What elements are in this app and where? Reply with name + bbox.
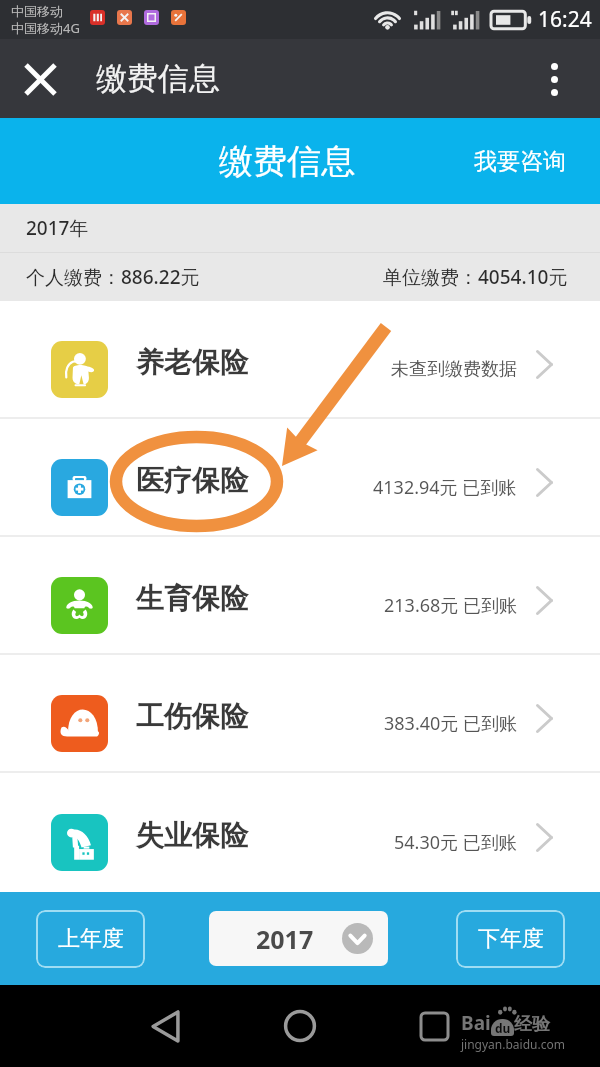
button[interactable]: 生育保险: [0, 537, 600, 653]
button[interactable]: 养老保险: [0, 301, 600, 417]
button[interactable]: Recent apps: [404, 996, 464, 1056]
staticText: 2017年: [26, 215, 89, 241]
staticText: 2017: [256, 922, 314, 956]
staticText: 个人缴费：886.22元: [26, 264, 200, 290]
staticText: 缴费信息: [219, 140, 355, 183]
button[interactable]: 下年度: [456, 910, 565, 968]
staticText: 失业保险: [136, 818, 248, 853]
button[interactable]: 工伤保险: [0, 655, 600, 771]
button[interactable]: Close: [10, 49, 70, 109]
staticText: 383.40元 已到账: [384, 711, 517, 736]
button[interactable]: Home: [265, 991, 335, 1061]
staticText: 养老保险: [136, 345, 248, 380]
staticText: 中国移动4G: [11, 19, 80, 37]
staticText: Bai: [461, 1010, 491, 1036]
staticText: 医疗保险: [136, 463, 248, 498]
button[interactable]: 缴费信息: [190, 118, 384, 204]
staticText: 我要咨询: [474, 147, 566, 176]
staticText: 54.30元 已到账: [394, 830, 517, 855]
staticText: 下年度: [478, 925, 544, 953]
staticText: 缴费信息: [96, 59, 220, 98]
staticText: 工伤保险: [136, 699, 248, 734]
button[interactable]: 上年度: [36, 910, 145, 968]
staticText: 213.68元 已到账: [384, 593, 517, 618]
staticText: du: [495, 1020, 511, 1036]
staticText: 经验: [514, 1013, 550, 1036]
staticText: 中国移动: [11, 3, 63, 19]
staticText: 4132.94元 已到账: [373, 475, 517, 500]
staticText: jingyan.baidu.com: [461, 1036, 565, 1052]
button[interactable]: Back: [130, 991, 200, 1061]
staticText: 16:24: [538, 5, 592, 34]
staticText: 上年度: [58, 925, 124, 953]
button[interactable]: 医疗保险: [0, 419, 600, 535]
staticText: 单位缴费：4054.10元: [383, 264, 568, 290]
staticText: 未查到缴费数据: [391, 358, 517, 381]
button[interactable]: 我要咨询: [450, 118, 590, 204]
button[interactable]: 失业保险: [0, 773, 600, 892]
button[interactable]: 2017: [209, 911, 388, 966]
staticText: 生育保险: [136, 581, 248, 616]
button[interactable]: More options: [534, 59, 574, 99]
